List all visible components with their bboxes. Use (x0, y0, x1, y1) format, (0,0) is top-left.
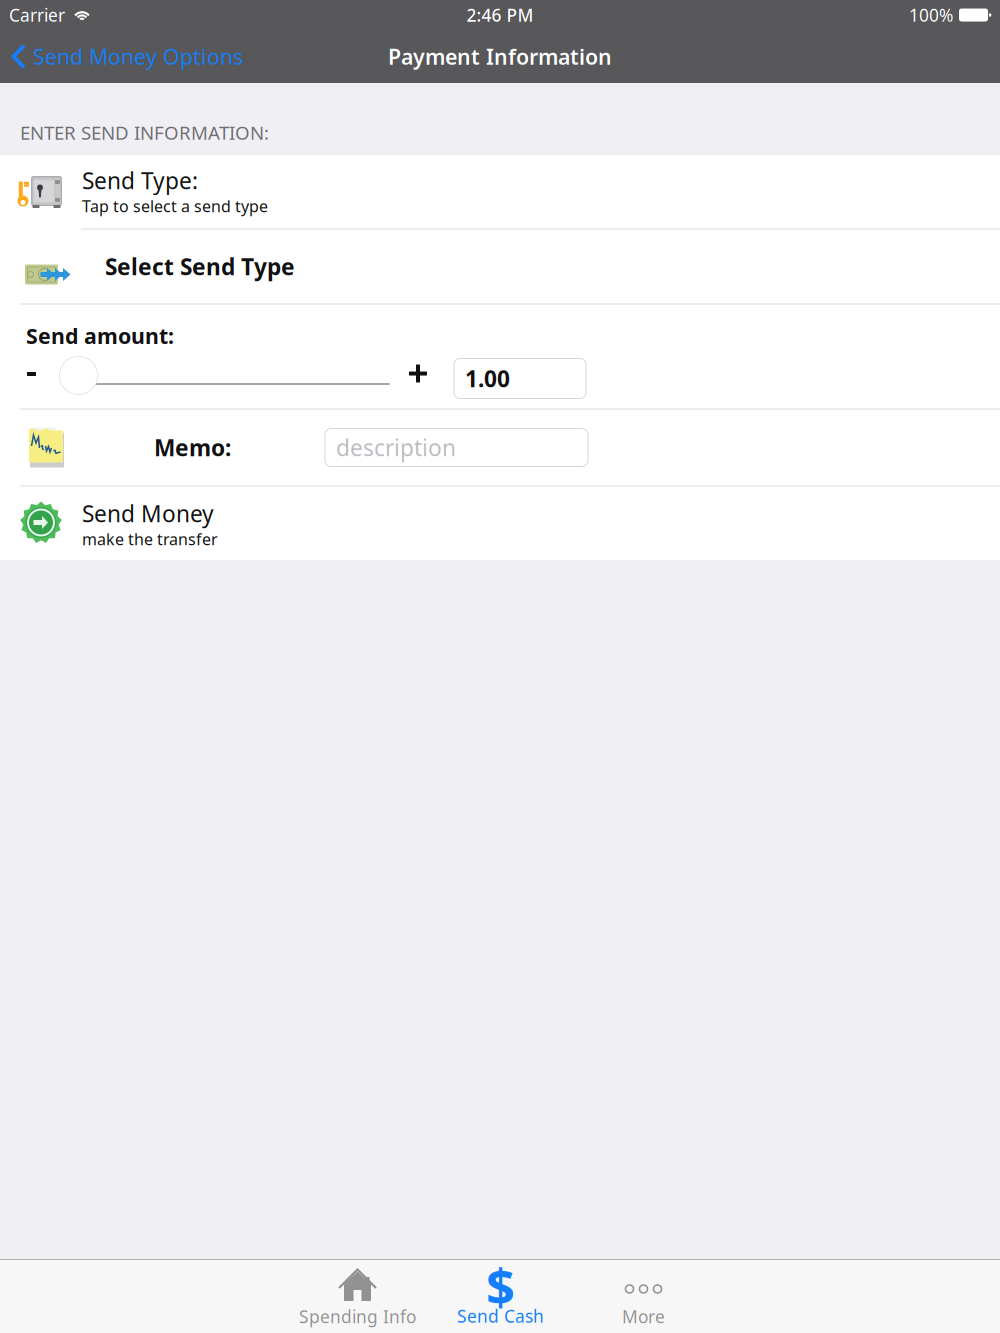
staticText: Send Money (82, 498, 214, 528)
staticText: Tap to select a send type (82, 195, 268, 217)
staticText: description (336, 432, 456, 462)
staticText: $ (486, 1252, 515, 1319)
button[interactable]: Decrease amount (19, 359, 44, 389)
button[interactable]: Send Type: (0, 153, 1000, 228)
button[interactable]: Spending Info (286, 1260, 429, 1333)
staticText: Send amount: (26, 321, 174, 350)
staticText: More (622, 1305, 665, 1328)
button[interactable]: More (572, 1260, 715, 1333)
staticText: 1.00 (465, 363, 510, 393)
staticText: Send Cash (457, 1304, 544, 1327)
button[interactable]: $ (429, 1260, 572, 1333)
staticText: ENTER SEND INFORMATION: (20, 120, 269, 145)
staticText: Carrier (9, 3, 65, 26)
staticText: Send Money Options (33, 42, 243, 71)
button[interactable]: Increase amount (402, 357, 434, 389)
button[interactable]: Send Money (0, 486, 1000, 561)
button[interactable]: description (325, 428, 588, 466)
staticText: Send Type: (82, 165, 198, 195)
staticText: 2:46 PM (466, 3, 533, 26)
staticText: 100% (909, 3, 953, 26)
button[interactable]: 1.00 (454, 358, 586, 398)
button[interactable]: Send amount slider (59, 356, 98, 395)
staticText: Spending Info (299, 1305, 416, 1328)
staticText: make the transfer (82, 528, 218, 550)
button[interactable]: Send Money Options (0, 30, 255, 83)
staticText: Payment Information (388, 42, 612, 71)
staticText: Select Send Type (105, 251, 295, 281)
staticText: Memo: (154, 432, 231, 462)
button[interactable]: Select Send Type (0, 229, 1000, 303)
